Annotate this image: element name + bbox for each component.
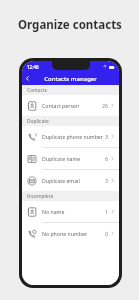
staticText: 3 bbox=[105, 133, 108, 140]
staticText: 26 bbox=[102, 102, 108, 109]
staticText: Duplicate phone number bbox=[42, 133, 105, 140]
staticText: 1 bbox=[105, 208, 108, 215]
staticText: Incomplete bbox=[27, 193, 54, 200]
button[interactable]: Back bbox=[22, 73, 33, 84]
staticText: Contacts manager bbox=[44, 75, 97, 83]
button[interactable]: No name bbox=[22, 201, 119, 222]
staticText: Organize contacts bbox=[18, 17, 122, 33]
button[interactable]: Contact person bbox=[22, 95, 119, 116]
staticText: 0 bbox=[105, 230, 108, 237]
staticText: 3 bbox=[105, 177, 108, 184]
staticText: Duplicate name bbox=[42, 155, 105, 162]
button[interactable]: Duplicate name bbox=[22, 148, 119, 169]
staticText: 12:40 bbox=[27, 64, 39, 70]
staticText: Duplicate email bbox=[42, 177, 105, 184]
staticText: No name bbox=[42, 208, 105, 215]
staticText: No phone number bbox=[42, 230, 105, 237]
button[interactable]: Duplicate phone number bbox=[22, 126, 119, 147]
staticText: Duplicate bbox=[27, 118, 49, 125]
staticText: Contact person bbox=[42, 102, 102, 109]
button[interactable]: Duplicate email bbox=[22, 170, 119, 191]
staticText: 6 bbox=[105, 155, 108, 162]
button[interactable]: No phone number bbox=[22, 223, 119, 244]
staticText: Contacts bbox=[27, 87, 48, 94]
